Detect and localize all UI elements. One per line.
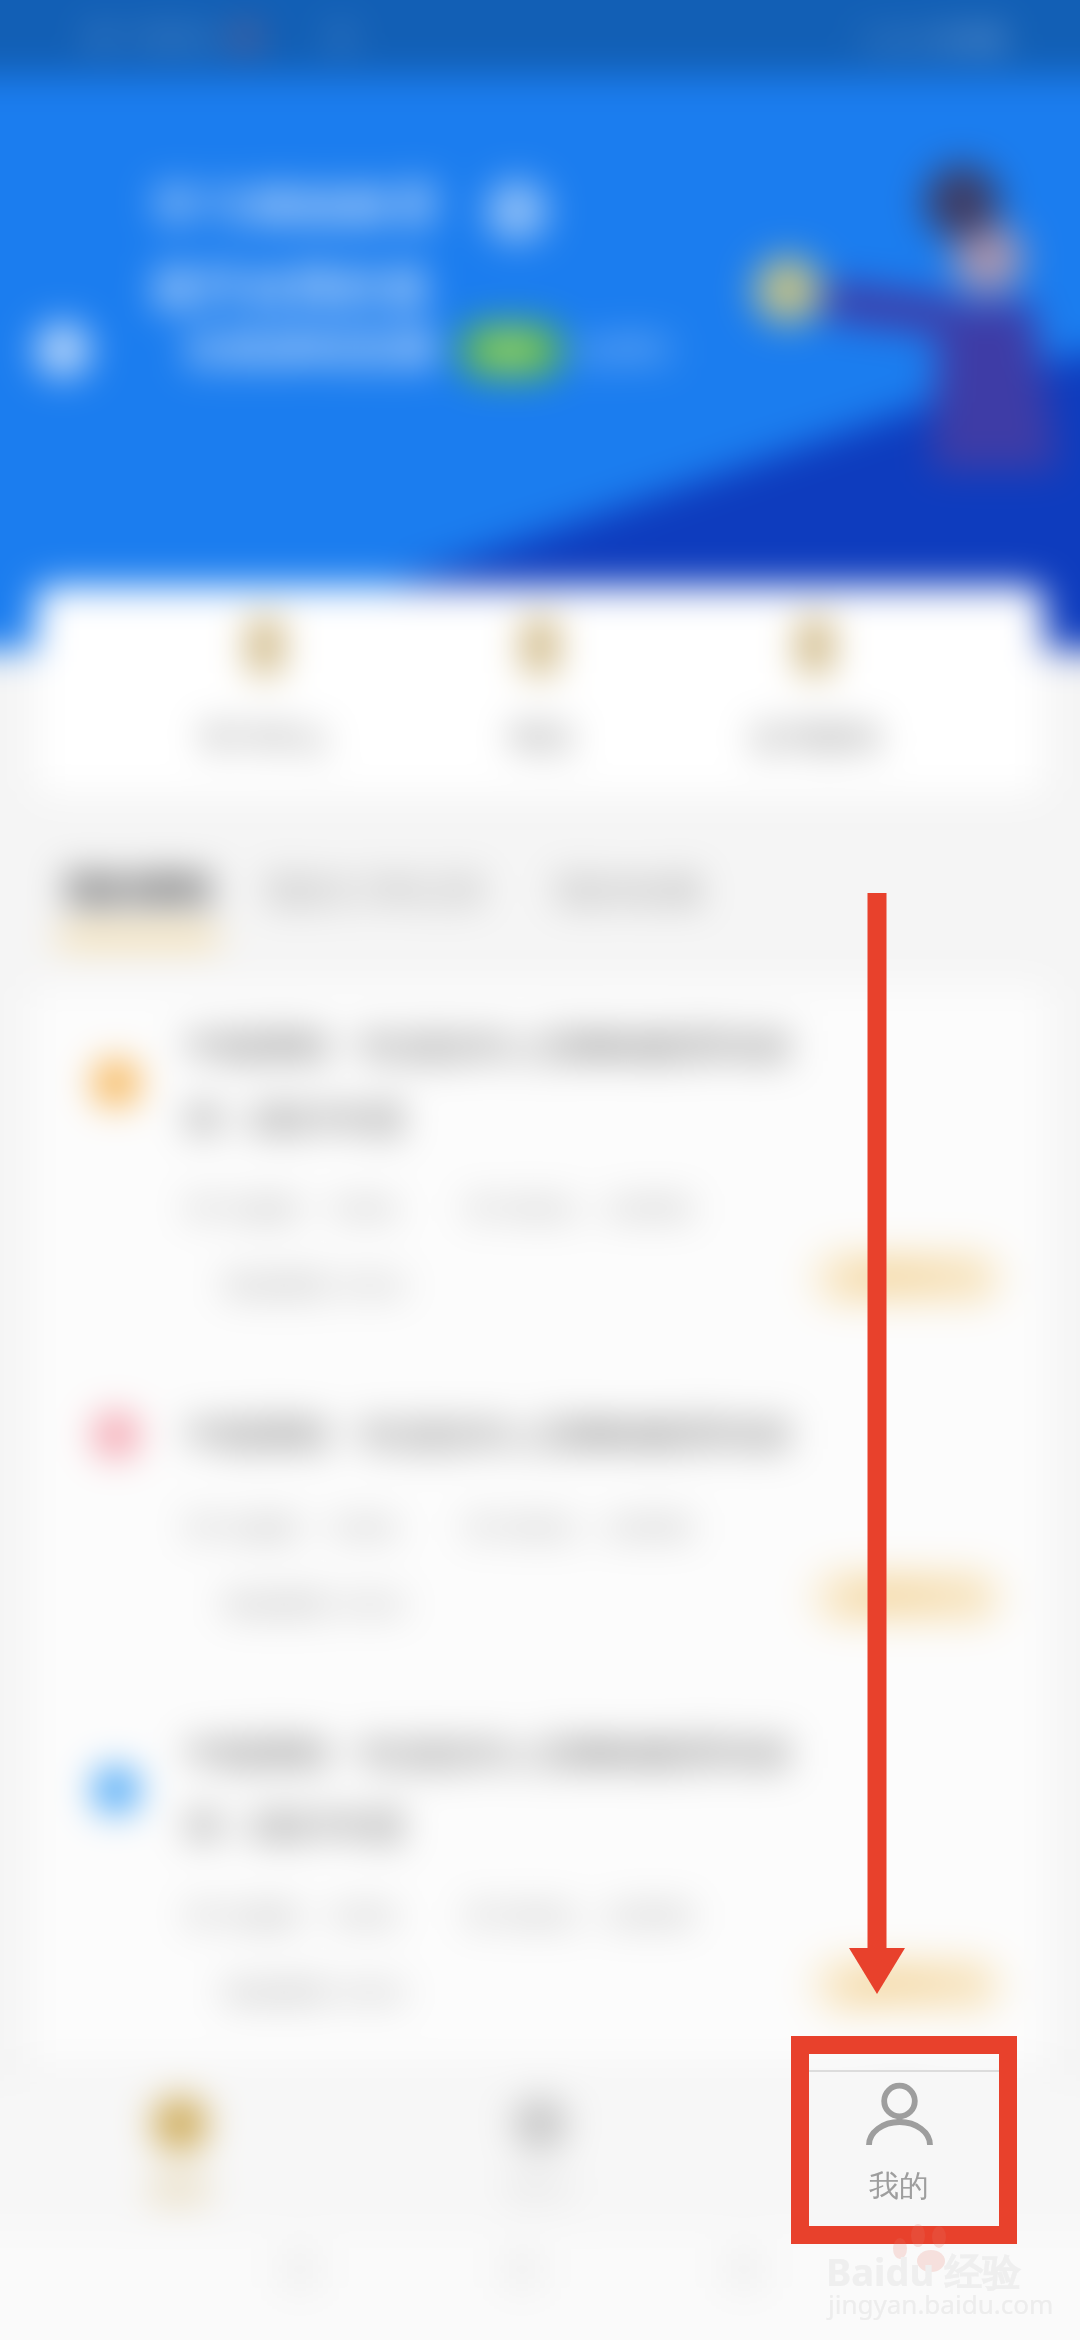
button[interactable]: 我的订单记录	[264, 867, 486, 930]
button[interactable]: 我的课程	[56, 867, 220, 944]
staticText: 班 · 2021年度	[186, 1801, 405, 1850]
staticText: 我的	[869, 2167, 929, 2205]
staticText: jingyan.baidu.com	[828, 2286, 1054, 2321]
button[interactable]: 我的收藏	[554, 867, 702, 930]
staticText: 在线课程直播	[183, 324, 435, 377]
staticText: 免费听	[573, 329, 675, 372]
staticText: 考试	[508, 718, 572, 758]
staticText: 证书查询	[751, 718, 879, 758]
button[interactable]: 中级课程 · 专业技术人员继续教育培训	[30, 1373, 1050, 1692]
staticText: 学习继续教育	[152, 178, 440, 238]
staticText: 立即学习	[835, 1963, 979, 2008]
staticText: 中级课程 · 专业技术人员继续教育培训	[186, 1409, 791, 1458]
staticText: 立即学习	[835, 1575, 979, 1620]
button[interactable]: 中级课程 · 专业技术人员继续教育培训	[30, 985, 1050, 1373]
staticText: 中级课程 · 专业技术人员继续教育培训	[186, 1728, 791, 1777]
staticText: 班 · 2021年度	[186, 1094, 405, 1143]
staticText: 学习中心	[201, 718, 329, 758]
staticText: 我的	[870, 2171, 930, 2209]
button[interactable]: 学习	[360, 2071, 720, 2231]
button[interactable]: 证书查询	[750, 586, 880, 758]
staticText: 提升自我价值	[152, 260, 428, 318]
button[interactable]: 我的	[720, 2071, 1080, 2231]
staticText: 领取	[483, 333, 539, 368]
button[interactable]: 我的	[806, 2070, 1002, 2232]
button[interactable]: 学习中心	[200, 586, 330, 758]
staticText: 中级课程 · 专业技术人员继续教育培训	[186, 1021, 791, 1070]
button[interactable]: 中级课程 · 专业技术人员继续教育培训	[30, 1692, 1050, 2080]
staticText: Baidu 经验	[826, 2245, 1020, 2297]
button[interactable]: 考试	[475, 586, 605, 758]
staticText: 首页	[150, 2171, 210, 2209]
staticText: 我的收藏	[554, 867, 702, 914]
button[interactable]: 首页	[0, 2071, 360, 2231]
staticText: 立即学习	[835, 1256, 979, 1301]
staticText: 我的课程	[64, 867, 212, 914]
